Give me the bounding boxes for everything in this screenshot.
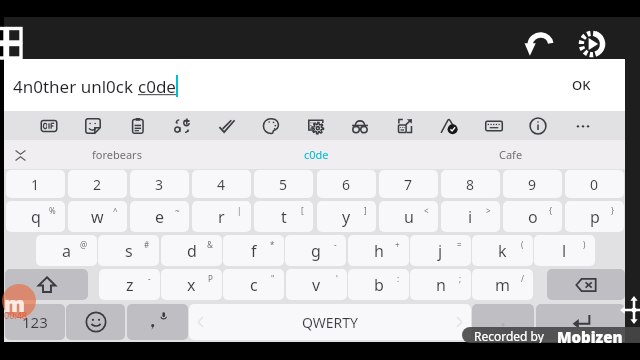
- staticText: }: [611, 205, 615, 216]
- staticText: m: [495, 274, 510, 296]
- button[interactable]: Apps: [0, 28, 21, 59]
- button[interactable]: Expand: [8, 143, 32, 167]
- button[interactable]: Space: [189, 304, 471, 340]
- staticText: b: [374, 274, 384, 296]
- button[interactable]: Clipboard: [122, 111, 154, 140]
- button[interactable]: m: [472, 269, 533, 300]
- button[interactable]: GIF: [33, 111, 65, 140]
- staticText: 3: [155, 175, 164, 194]
- staticText: -: [148, 273, 151, 284]
- staticText: >: [486, 205, 491, 216]
- staticText: c: [250, 274, 258, 296]
- button[interactable]: 3: [130, 170, 189, 198]
- button[interactable]: 0: [565, 170, 624, 198]
- button[interactable]: Undo: [518, 24, 558, 64]
- staticText: x: [187, 274, 196, 296]
- button[interactable]: Comma: [127, 304, 188, 340]
- staticText: 6: [342, 175, 351, 194]
- staticText: {: [549, 205, 553, 216]
- button[interactable]: 7: [379, 170, 438, 198]
- staticText: n: [436, 274, 446, 296]
- button[interactable]: z: [99, 269, 160, 300]
- button[interactable]: Handwriting: [433, 111, 465, 140]
- button[interactable]: c0de: [218, 140, 414, 169]
- staticText: &: [207, 239, 213, 250]
- staticText: QWERTY: [302, 313, 359, 332]
- button[interactable]: Shift: [5, 269, 88, 300]
- button[interactable]: Stickers: [77, 111, 109, 140]
- staticText: 8: [466, 175, 475, 194]
- button[interactable]: b: [348, 269, 409, 300]
- staticText: i: [468, 206, 473, 228]
- button[interactable]: p: [565, 201, 624, 232]
- button[interactable]: forebears: [34, 140, 200, 169]
- button[interactable]: 1: [6, 170, 65, 198]
- button[interactable]: x: [161, 269, 222, 300]
- button[interactable]: OK: [558, 70, 604, 100]
- button[interactable]: y: [317, 201, 376, 232]
- button[interactable]: Period: [472, 304, 534, 340]
- button[interactable]: a: [36, 235, 97, 266]
- button[interactable]: Emoji: [66, 304, 125, 340]
- button[interactable]: o: [503, 201, 562, 232]
- staticText: l: [562, 240, 567, 262]
- button[interactable]: v: [286, 269, 347, 300]
- staticText: r: [218, 206, 225, 228]
- button[interactable]: k: [472, 235, 533, 266]
- button[interactable]: 8: [441, 170, 500, 198]
- button[interactable]: Resize: [389, 111, 421, 140]
- staticText: a: [62, 240, 71, 262]
- staticText: o: [528, 206, 538, 228]
- button[interactable]: s: [98, 235, 159, 266]
- button[interactable]: j: [410, 235, 471, 266]
- button[interactable]: Record: [572, 24, 612, 64]
- button[interactable]: Incognito: [344, 111, 376, 140]
- button[interactable]: Spell check: [211, 111, 243, 140]
- button[interactable]: Translate: [166, 111, 198, 140]
- button[interactable]: h: [348, 235, 409, 266]
- button[interactable]: f: [223, 235, 284, 266]
- staticText: t: [281, 206, 287, 228]
- button[interactable]: r: [192, 201, 251, 232]
- button[interactable]: 9: [503, 170, 562, 198]
- staticText: s: [125, 240, 133, 262]
- button[interactable]: Backspace: [547, 269, 625, 300]
- button[interactable]: c: [223, 269, 284, 300]
- staticText: forebears: [92, 147, 142, 162]
- staticText: 4: [217, 175, 226, 194]
- staticText: ": [271, 273, 275, 284]
- button[interactable]: Themes: [255, 111, 287, 140]
- staticText: y: [342, 206, 351, 228]
- staticText: *: [270, 239, 275, 250]
- button[interactable]: u: [379, 201, 438, 232]
- button[interactable]: 6: [317, 170, 376, 198]
- staticText: v: [312, 274, 321, 296]
- button[interactable]: l: [534, 235, 595, 266]
- button[interactable]: 5: [254, 170, 313, 198]
- staticText: 5: [279, 175, 288, 194]
- staticText: +: [395, 239, 400, 250]
- staticText: 2: [93, 175, 102, 194]
- button[interactable]: 4: [192, 170, 251, 198]
- button[interactable]: w: [68, 201, 127, 232]
- button[interactable]: More options: [567, 111, 599, 140]
- button[interactable]: g: [285, 235, 346, 266]
- button[interactable]: Keyboard: [478, 111, 510, 140]
- button[interactable]: n: [410, 269, 471, 300]
- staticText: (: [521, 239, 524, 250]
- staticText: f: [251, 240, 257, 262]
- button[interactable]: Settings: [300, 111, 332, 140]
- button[interactable]: Enter: [536, 304, 625, 340]
- staticText: ^: [113, 205, 118, 216]
- button[interactable]: Info: [522, 111, 554, 140]
- button[interactable]: d: [161, 235, 222, 266]
- button[interactable]: e: [130, 201, 189, 232]
- staticText: j: [438, 240, 443, 262]
- button[interactable]: 2: [68, 170, 127, 198]
- button[interactable]: t: [254, 201, 313, 232]
- button[interactable]: i: [441, 201, 500, 232]
- button[interactable]: Cafe: [424, 140, 598, 169]
- button[interactable]: q: [6, 201, 65, 232]
- staticText: e: [155, 206, 165, 228]
- button[interactable]: 123: [5, 304, 65, 340]
